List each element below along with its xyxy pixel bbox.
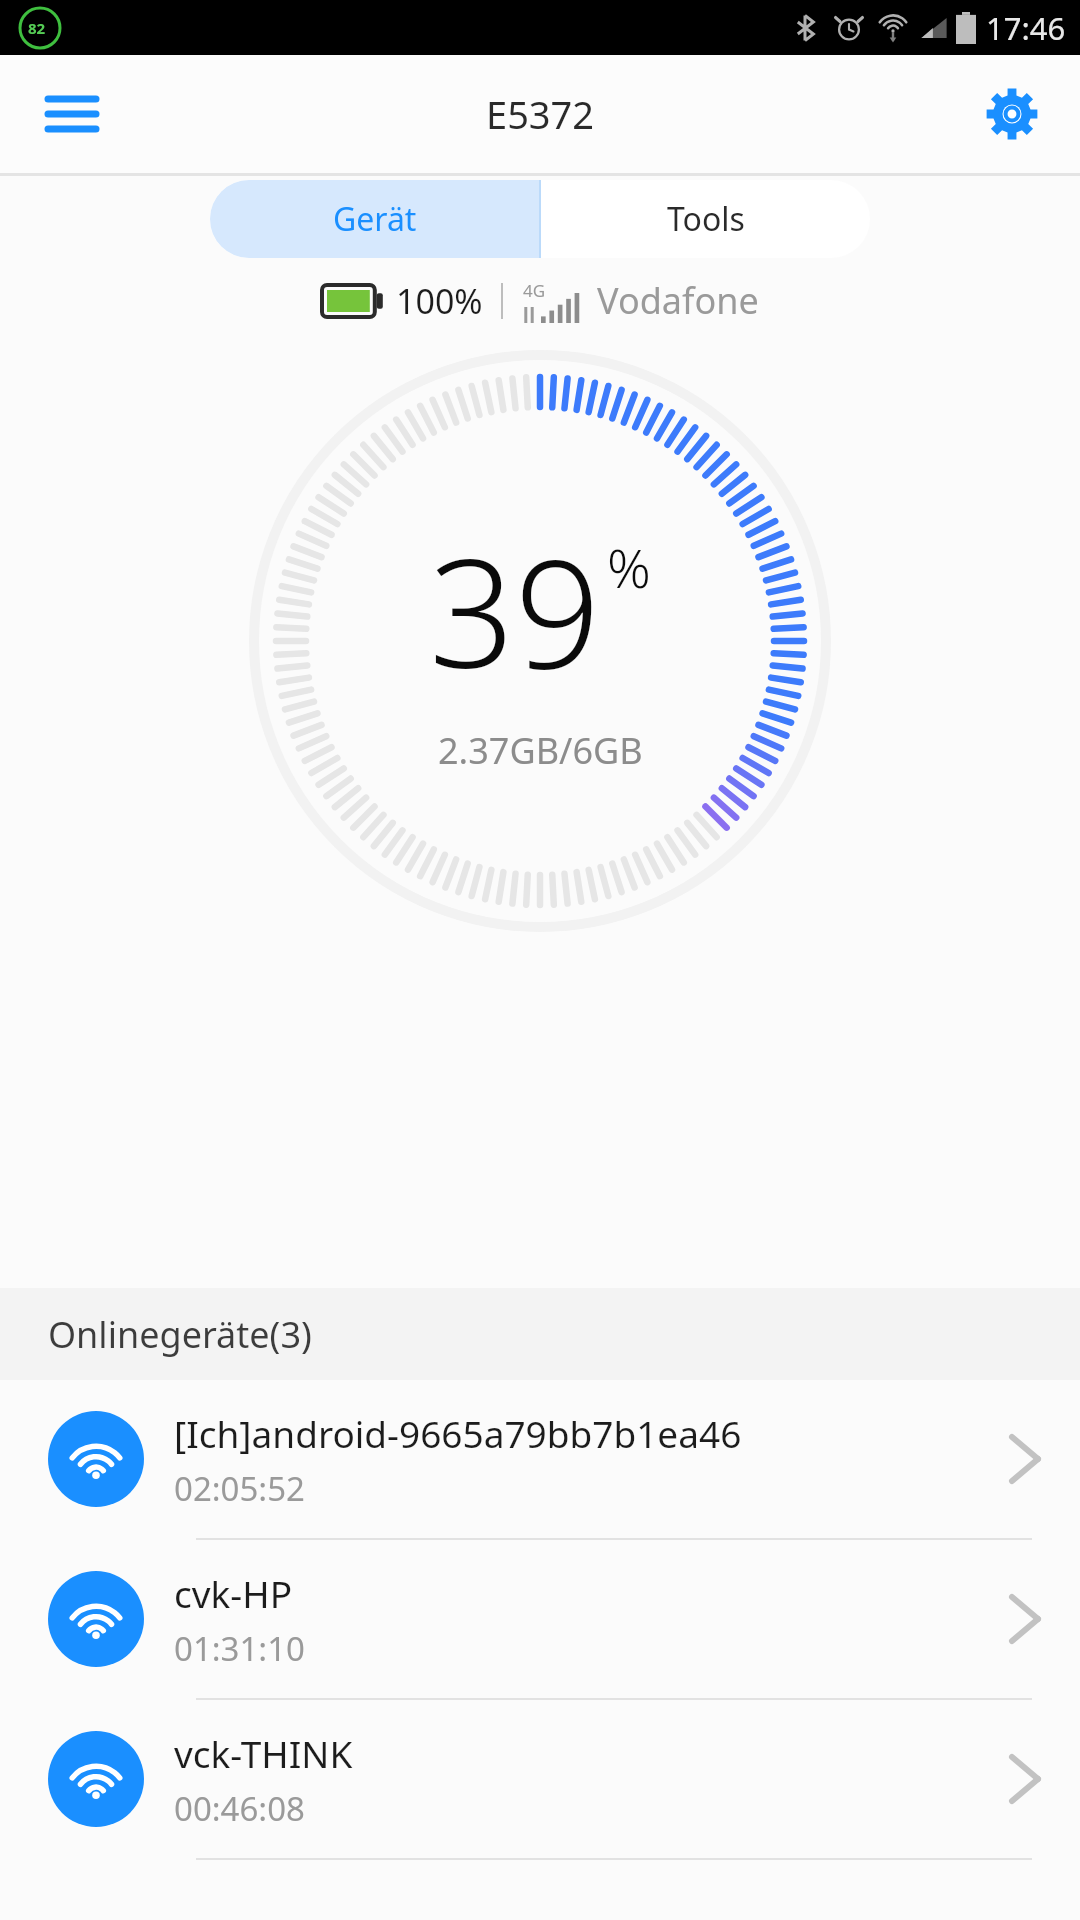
- staticText: 100%: [396, 278, 483, 324]
- staticText: [Ich]android-9665a79bb7b1ea46: [174, 1408, 742, 1458]
- button[interactable]: Gerät: [210, 180, 539, 258]
- staticText: Vodafone: [597, 276, 759, 325]
- staticText: 01:31:10: [174, 1626, 305, 1671]
- button[interactable]: vck-THINK: [0, 1700, 1080, 1860]
- button[interactable]: Settings: [976, 78, 1048, 150]
- staticText: %: [607, 530, 651, 604]
- staticText: cvk-HP: [174, 1568, 293, 1618]
- staticText: 17:46: [986, 7, 1066, 49]
- staticText: 82: [28, 18, 46, 38]
- button[interactable]: Menu: [36, 78, 108, 150]
- staticText: Onlinegeräte(3): [48, 1310, 312, 1359]
- staticText: 00:46:08: [174, 1786, 305, 1831]
- staticText: Gerät: [333, 197, 417, 241]
- staticText: 2.37GB/6GB: [438, 726, 643, 775]
- staticText: 02:05:52: [174, 1466, 305, 1511]
- staticText: Tools: [667, 197, 745, 241]
- button[interactable]: [Ich]android-9665a79bb7b1ea46: [0, 1380, 1080, 1540]
- button[interactable]: Tools: [541, 180, 870, 258]
- staticText: E5372: [486, 88, 595, 140]
- button[interactable]: cvk-HP: [0, 1540, 1080, 1700]
- staticText: 4G: [523, 279, 546, 302]
- staticText: vck-THINK: [174, 1728, 353, 1778]
- staticText: 39: [429, 508, 601, 712]
